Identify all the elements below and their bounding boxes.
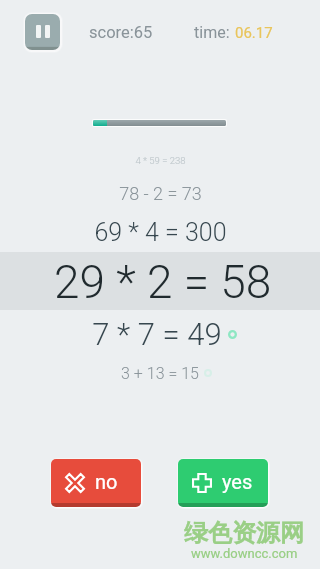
staticText: score:65 (89, 23, 153, 42)
staticText: 7 * 7 = 49 (92, 316, 222, 352)
staticText: 06.17 (235, 24, 273, 42)
staticText: time: (194, 23, 230, 42)
staticText: www.downcc.com (191, 546, 298, 561)
staticText: no (95, 470, 118, 493)
staticText: 3 + 13 = 15 (121, 364, 199, 383)
staticText: 78 - 2 = 73 (119, 183, 202, 204)
staticText: 29 * 2 = 58 (54, 255, 272, 309)
button[interactable]: yes (178, 459, 268, 507)
staticText: yes (222, 470, 253, 493)
button[interactable]: no (51, 459, 141, 507)
staticText: 4 * 59 = 238 (135, 155, 186, 166)
button[interactable]: Pause (25, 14, 60, 50)
staticText: 69 * 4 = 300 (94, 218, 227, 247)
staticText: 绿色资源网 (184, 518, 304, 548)
